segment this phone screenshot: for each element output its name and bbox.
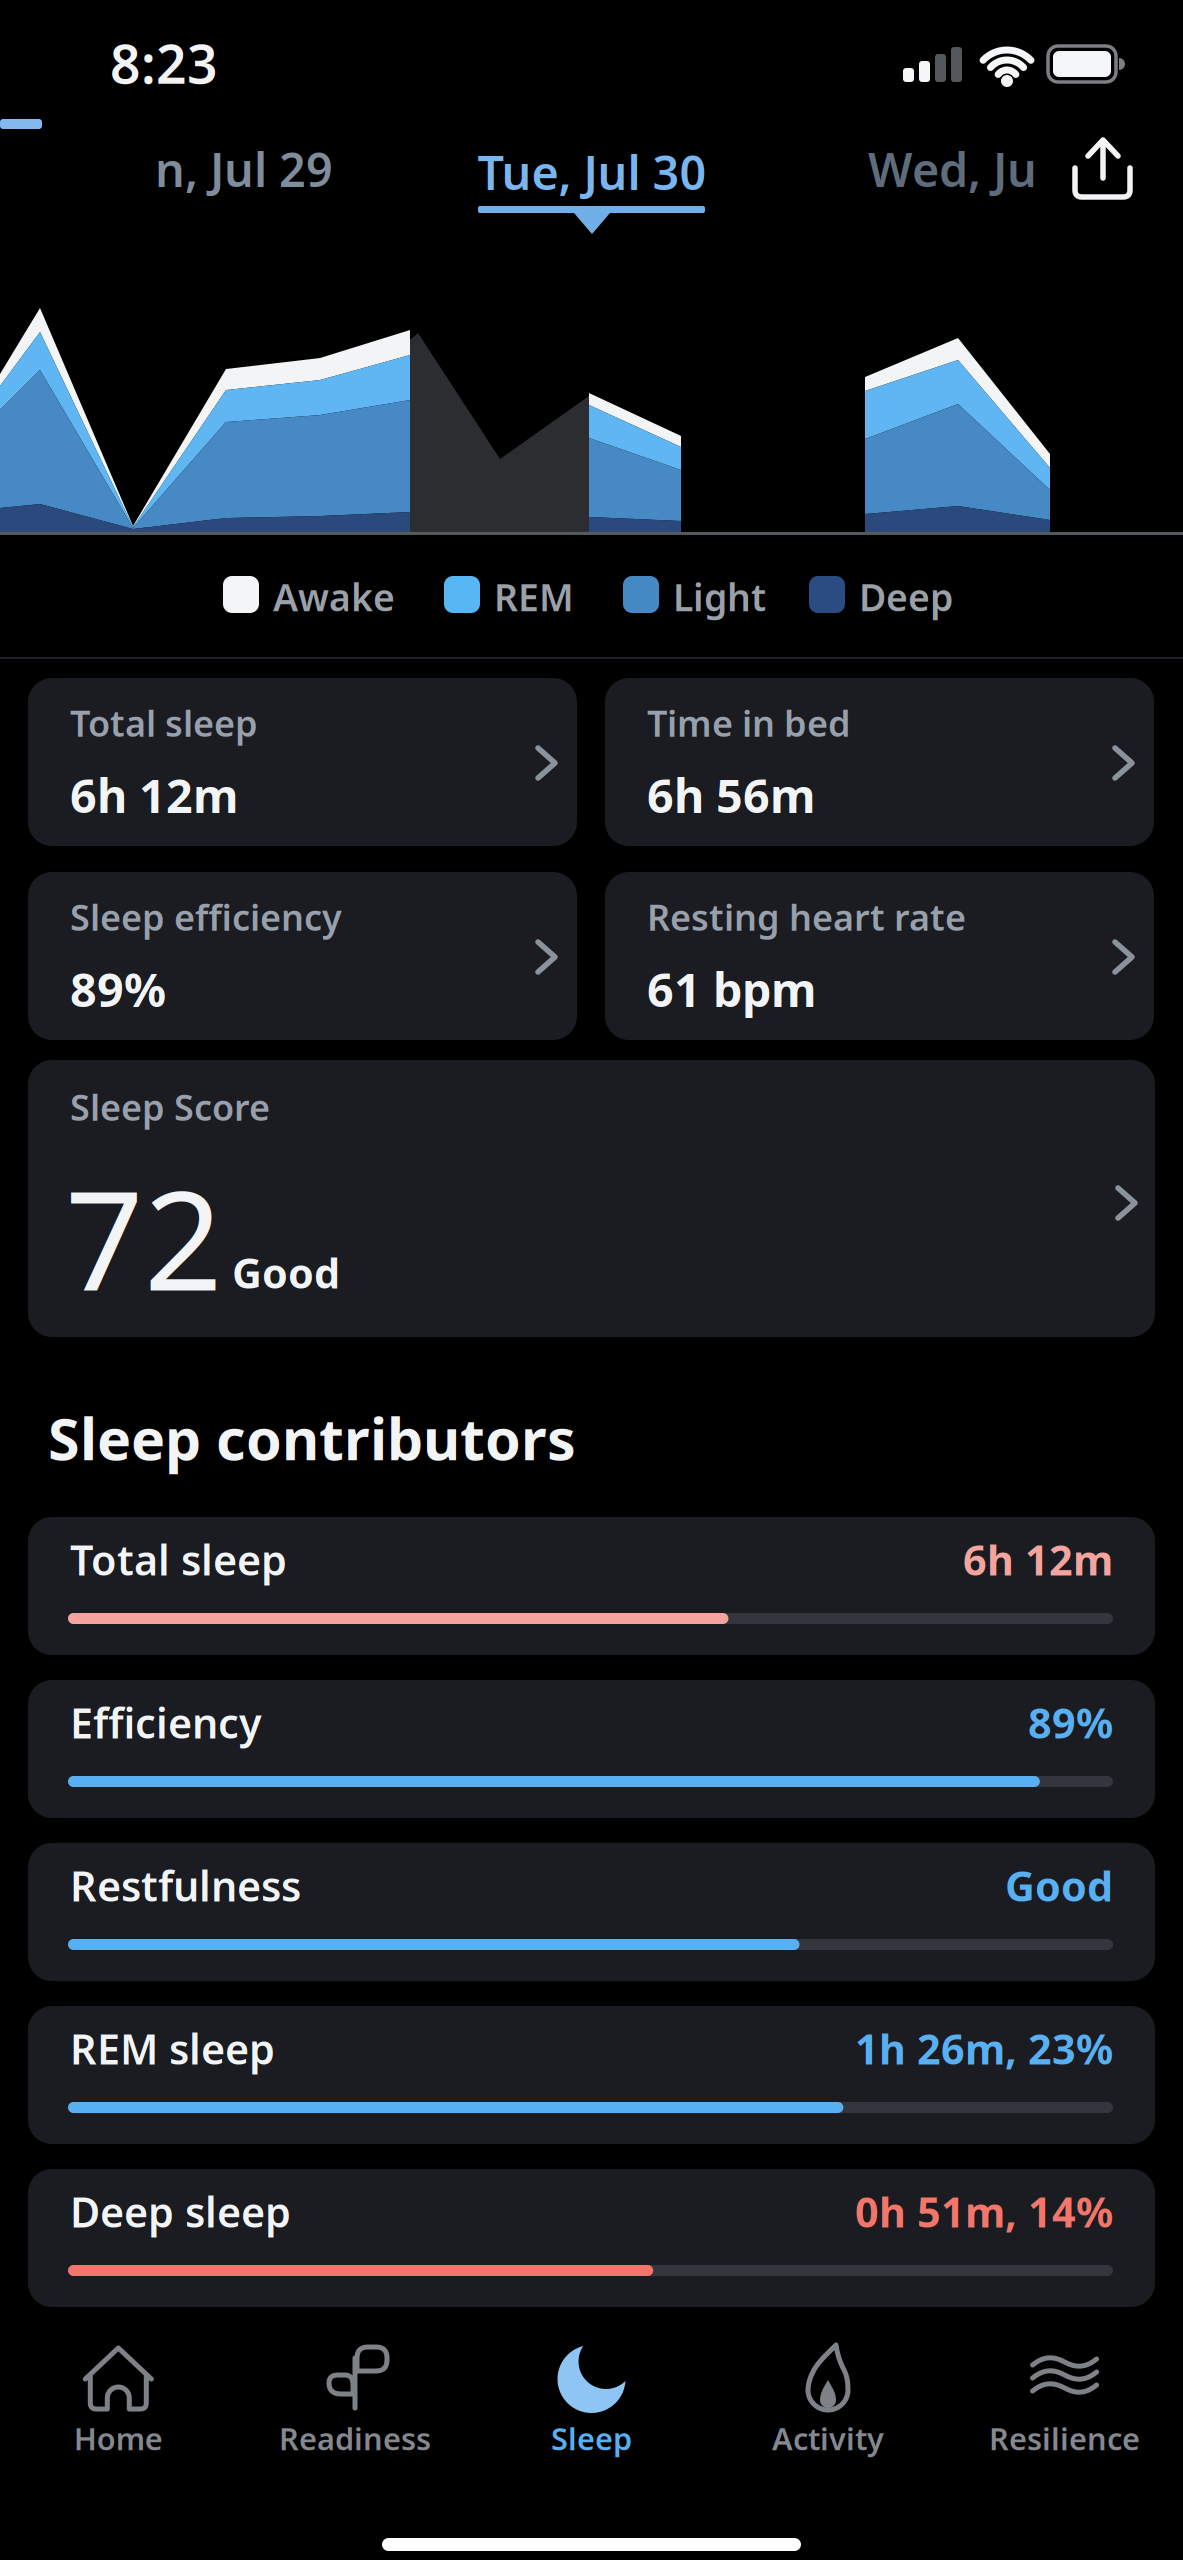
staticText: Light xyxy=(673,572,766,622)
staticText: Sleep Score xyxy=(70,1083,270,1131)
button[interactable]: Total sleep xyxy=(28,1517,1155,1655)
button[interactable]: Activity xyxy=(733,2342,923,2464)
button[interactable]: Resting heart rate xyxy=(605,872,1154,1040)
button[interactable]: Sleep xyxy=(496,2342,686,2464)
staticText: Total sleep xyxy=(70,1532,287,1587)
staticText: 6h 56m xyxy=(647,764,816,826)
staticText: 1h 26m, 23% xyxy=(855,2021,1113,2076)
staticText: Sleep contributors xyxy=(48,1400,576,1476)
staticText: 6h 12m xyxy=(963,1532,1113,1587)
staticText: 61 bpm xyxy=(647,958,817,1020)
staticText: Sleep xyxy=(551,2418,632,2459)
staticText: REM xyxy=(494,572,574,622)
staticText: Deep sleep xyxy=(70,2184,291,2239)
staticText: 0h 51m, 14% xyxy=(855,2184,1113,2239)
staticText: 72 xyxy=(65,1146,223,1328)
button[interactable]: Deep sleep xyxy=(28,2169,1155,2307)
staticText: Tue, Jul 30 xyxy=(477,141,706,203)
staticText: Deep xyxy=(859,572,953,622)
staticText: 89% xyxy=(1028,1695,1113,1750)
button[interactable]: Home xyxy=(23,2342,213,2464)
button[interactable]: REM sleep xyxy=(28,2006,1155,2144)
button[interactable]: Time in bed xyxy=(605,678,1154,846)
button[interactable]: Sleep Score xyxy=(28,1060,1155,1337)
button[interactable]: Efficiency xyxy=(28,1680,1155,1818)
staticText: Good xyxy=(1005,1858,1113,1913)
staticText: Wed, Ju xyxy=(868,138,1037,200)
button[interactable]: Share xyxy=(1065,138,1135,202)
button[interactable]: Wed, Ju xyxy=(868,138,1037,200)
button[interactable]: Restfulness xyxy=(28,1843,1155,1981)
button[interactable]: n, Jul 29 xyxy=(155,138,333,200)
staticText: n, Jul 29 xyxy=(155,138,333,200)
staticText: Readiness xyxy=(279,2418,431,2459)
staticText: REM sleep xyxy=(70,2021,275,2076)
staticText: Time in bed xyxy=(647,699,851,747)
staticText: Activity xyxy=(772,2418,884,2459)
button[interactable]: Sleep efficiency xyxy=(28,872,577,1040)
button[interactable]: Resilience xyxy=(970,2342,1160,2464)
staticText: 89% xyxy=(70,958,166,1020)
staticText: Home xyxy=(74,2418,163,2459)
button[interactable]: Total sleep xyxy=(28,678,577,846)
staticText: Good xyxy=(232,1245,340,1300)
staticText: Efficiency xyxy=(70,1695,262,1750)
staticText: 8:23 xyxy=(110,28,218,98)
staticText: Awake xyxy=(273,572,395,622)
staticText: Total sleep xyxy=(70,699,258,747)
staticText: Resting heart rate xyxy=(647,893,966,941)
staticText: Resilience xyxy=(989,2418,1140,2459)
staticText: Sleep efficiency xyxy=(70,893,342,941)
button[interactable]: Tue, Jul 30 xyxy=(452,148,732,236)
button[interactable]: Readiness xyxy=(260,2342,450,2464)
staticText: 6h 12m xyxy=(70,764,239,826)
staticText: Restfulness xyxy=(70,1858,301,1913)
